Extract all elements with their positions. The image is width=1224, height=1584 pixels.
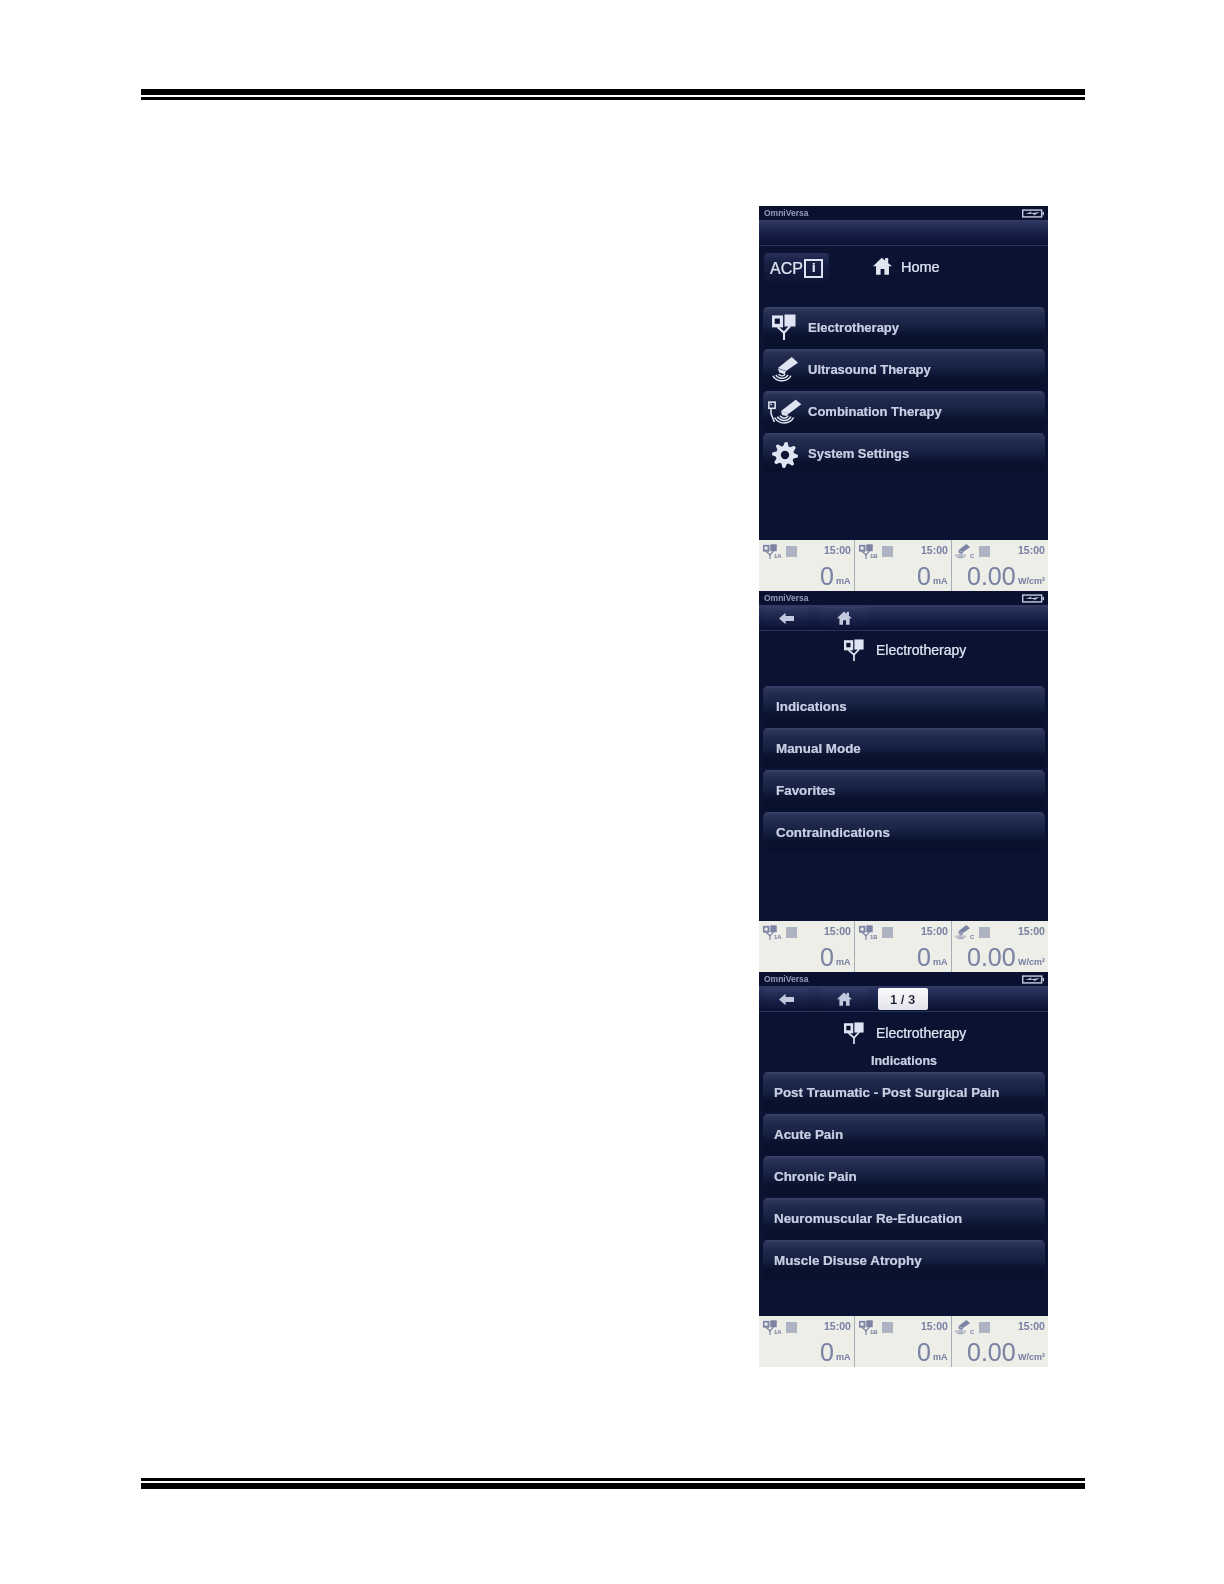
staticText: mA [836, 957, 851, 967]
staticText: C [970, 553, 975, 560]
staticText: W/cm² [1018, 1352, 1045, 1362]
staticText: Neuromuscular Re-Education [774, 1211, 963, 1226]
staticText: C [970, 934, 975, 941]
staticText: 1A [774, 934, 782, 941]
staticText: 15:00 [824, 544, 851, 556]
staticText: Manual Mode [776, 741, 861, 756]
button[interactable]: Indications [763, 686, 1045, 726]
button[interactable]: Neuromuscular Re-Education [763, 1198, 1045, 1238]
staticText: System Settings [808, 446, 910, 461]
staticText: Muscle Disuse Atrophy [774, 1253, 922, 1268]
button[interactable]: Combination Therapy [763, 391, 1045, 431]
staticText: 0 [917, 1338, 931, 1366]
staticText: 15:00 [921, 1320, 948, 1332]
staticText: 1B [870, 1329, 878, 1336]
button[interactable]: Favorites [763, 770, 1045, 810]
staticText: i [812, 260, 816, 275]
staticText: 15:00 [824, 1320, 851, 1332]
staticText: Indications [871, 1054, 937, 1068]
staticText: Electrotherapy [876, 642, 967, 658]
staticText: mA [933, 576, 948, 586]
staticText: 0 [917, 943, 931, 971]
staticText: Favorites [776, 783, 836, 798]
staticText: 1B [870, 934, 878, 941]
staticText: 1B [870, 553, 878, 560]
button[interactable]: Contraindications [763, 812, 1045, 852]
staticText: mA [933, 1352, 948, 1362]
staticText: Electrotherapy [808, 320, 900, 335]
staticText: 0 [820, 562, 834, 590]
staticText: 15:00 [921, 925, 948, 937]
other: Battery [1022, 209, 1044, 218]
staticText: Post Traumatic - Post Surgical Pain [774, 1085, 1000, 1100]
button[interactable]: Home [821, 988, 868, 1010]
staticText: 15:00 [824, 925, 851, 937]
staticText: W/cm² [1018, 957, 1045, 967]
staticText: 0.00 [967, 562, 1016, 590]
staticText: 0 [820, 1338, 834, 1366]
staticText: Chronic Pain [774, 1169, 857, 1184]
other: Battery [1022, 975, 1044, 984]
button[interactable]: Home [821, 607, 868, 629]
staticText: 15:00 [1018, 544, 1045, 556]
staticText: Indications [776, 699, 847, 714]
staticText: C [970, 1329, 975, 1336]
staticText: W/cm² [1018, 576, 1045, 586]
staticText: Contraindications [776, 825, 890, 840]
button[interactable]: Acute Pain [763, 1114, 1045, 1154]
staticText: 15:00 [1018, 925, 1045, 937]
button[interactable]: Post Traumatic - Post Surgical Pain [763, 1072, 1045, 1112]
staticText: mA [836, 1352, 851, 1362]
staticText: 1 / 3 [890, 992, 916, 1007]
staticText: Combination Therapy [808, 404, 942, 419]
staticText: OmniVersa [764, 974, 809, 983]
staticText: 15:00 [1018, 1320, 1045, 1332]
staticText: Acute Pain [774, 1127, 844, 1142]
button[interactable]: System Settings [763, 433, 1045, 473]
button[interactable]: Electrotherapy [763, 307, 1045, 347]
button[interactable]: Back [763, 988, 809, 1010]
button[interactable]: 1 / 3 [878, 988, 928, 1010]
button[interactable]: Muscle Disuse Atrophy [763, 1240, 1045, 1280]
button[interactable]: Ultrasound Therapy [763, 349, 1045, 389]
staticText: 0 [820, 943, 834, 971]
staticText: ACP [770, 260, 803, 278]
staticText: 1A [774, 553, 782, 560]
button[interactable]: Chronic Pain [763, 1156, 1045, 1196]
staticText: Electrotherapy [876, 1025, 967, 1041]
button[interactable]: Manual Mode [763, 728, 1045, 768]
staticText: mA [933, 957, 948, 967]
staticText: 1A [774, 1329, 782, 1336]
staticText: 0.00 [967, 943, 1016, 971]
button[interactable]: Back [763, 607, 809, 629]
staticText: Home [901, 259, 940, 275]
staticText: mA [836, 576, 851, 586]
staticText: 0 [917, 562, 931, 590]
staticText: OmniVersa [764, 593, 809, 602]
staticText: OmniVersa [764, 208, 809, 217]
staticText: 0.00 [967, 1338, 1016, 1366]
staticText: 15:00 [921, 544, 948, 556]
staticText: Ultrasound Therapy [808, 362, 931, 377]
other: Battery [1022, 594, 1044, 603]
button[interactable]: ACP [764, 253, 829, 284]
